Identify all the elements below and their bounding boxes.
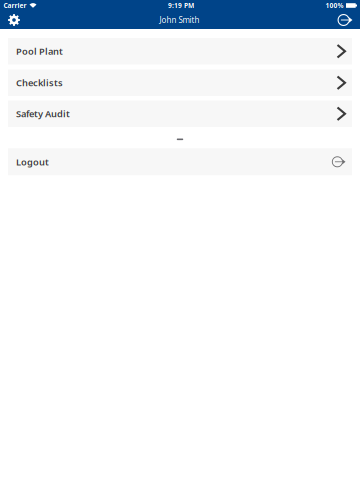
button[interactable]: Log out	[332, 11, 358, 29]
staticText: 9:19 PM	[168, 1, 194, 10]
button[interactable]: Checklists	[8, 69, 352, 96]
staticText: Logout	[16, 156, 49, 168]
staticText: Carrier	[3, 1, 26, 10]
staticText: Checklists	[16, 77, 63, 89]
staticText: John Smith	[159, 15, 199, 25]
staticText: 100%	[325, 1, 343, 10]
button[interactable]: Settings	[1, 11, 27, 29]
staticText: Safety Audit	[16, 108, 70, 120]
button[interactable]: Logout	[8, 148, 352, 175]
staticText: Pool Plant	[16, 45, 63, 57]
button[interactable]: Pool Plant	[8, 38, 352, 64]
button[interactable]: Safety Audit	[8, 100, 352, 127]
